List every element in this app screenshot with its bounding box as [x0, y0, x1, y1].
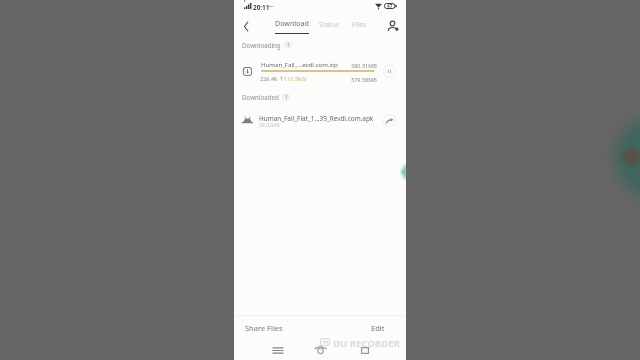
button[interactable]: Download: [269, 15, 314, 37]
button[interactable]: Home: [312, 341, 329, 358]
button[interactable]: Pause: [381, 63, 397, 79]
staticText: 226.4K: [260, 75, 278, 82]
staticText: 379.58MB: [351, 76, 377, 83]
button[interactable]: Human_Fall_Flat_1...39_Revdl.com.apk: [234, 110, 406, 134]
button[interactable]: Back: [236, 15, 256, 37]
staticText: 20:11: [253, 3, 270, 12]
staticText: Download: [275, 18, 309, 28]
button[interactable]: Status: [316, 15, 342, 37]
staticText: Files: [352, 20, 367, 29]
staticText: Share Files: [245, 323, 283, 333]
button[interactable]: Add account: [382, 15, 404, 37]
button[interactable]: Files: [347, 15, 371, 37]
button[interactable]: Human_Fall_...evdl.com.zip: [234, 56, 406, 86]
button[interactable]: Share: [381, 112, 397, 128]
staticText: Downloading: [242, 41, 281, 49]
staticText: 47: [387, 3, 393, 9]
staticText: Downloaded: [242, 93, 279, 101]
staticText: Human_Fall_...evdl.com.zip: [261, 60, 338, 68]
staticText: 380.31MB: [351, 62, 377, 69]
staticText: 1: [287, 42, 290, 49]
button[interactable]: Back: [357, 342, 373, 358]
button[interactable]: Share Files: [241, 319, 287, 337]
button[interactable]: Downloading: [242, 39, 292, 51]
staticText: 1: [285, 94, 288, 101]
staticText: Status: [319, 20, 339, 29]
button[interactable]: Downloaded: [242, 91, 290, 103]
staticText: 39.92MB: [259, 122, 280, 129]
button[interactable]: Recents: [270, 342, 286, 358]
staticText: DU RECORDER: [333, 337, 400, 350]
button[interactable]: Edit: [367, 319, 389, 337]
staticText: Human_Fall_Flat_1...39_Revdl.com.apk: [259, 114, 374, 123]
staticText: Edit: [371, 323, 385, 333]
staticText: 111.5K/s: [284, 75, 307, 82]
